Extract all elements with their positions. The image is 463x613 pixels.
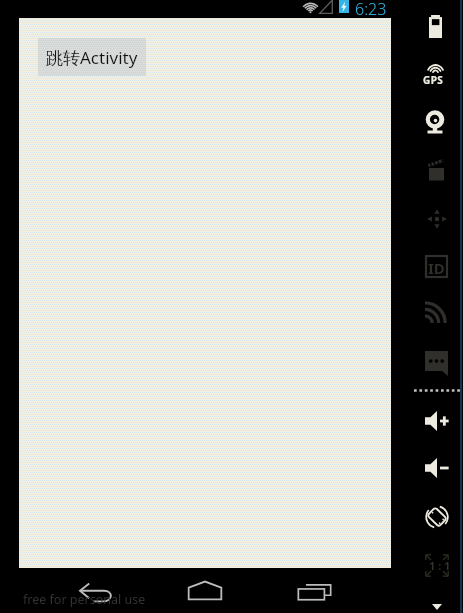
button[interactable]: Volume up bbox=[425, 411, 449, 431]
staticText: 跳转Activity bbox=[46, 46, 138, 69]
button[interactable]: Record screen bbox=[428, 157, 446, 182]
button[interactable]: Zoom 1 to 1 bbox=[425, 554, 449, 577]
staticText: free for personal use bbox=[23, 591, 146, 608]
button[interactable]: Home bbox=[188, 581, 222, 600]
button[interactable]: Identifiers bbox=[425, 255, 448, 278]
staticText: 1 : 1 bbox=[429, 558, 451, 573]
button[interactable]: Volume down bbox=[425, 458, 449, 478]
staticText: ID bbox=[428, 258, 445, 278]
button[interactable]: Rotate screen bbox=[425, 505, 449, 529]
staticText: 6:23 bbox=[355, 0, 387, 20]
button[interactable]: Recent apps bbox=[298, 583, 331, 601]
button[interactable]: Show more bbox=[432, 604, 442, 610]
button[interactable]: Battery bbox=[429, 15, 442, 38]
button[interactable]: Back bbox=[79, 582, 112, 601]
button[interactable]: SMS bbox=[425, 351, 448, 376]
button[interactable]: 跳转Activity bbox=[38, 38, 146, 76]
button[interactable]: Accelerometer bbox=[427, 209, 447, 229]
button[interactable]: Network bbox=[425, 302, 446, 323]
button[interactable]: Camera bbox=[425, 109, 446, 134]
button[interactable]: GPS bbox=[427, 63, 444, 73]
button[interactable]: GPS bbox=[423, 73, 444, 87]
